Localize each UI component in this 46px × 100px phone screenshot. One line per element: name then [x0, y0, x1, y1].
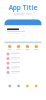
staticText: subtitle line	[14, 12, 32, 16]
staticText: App Title	[8, 3, 37, 12]
